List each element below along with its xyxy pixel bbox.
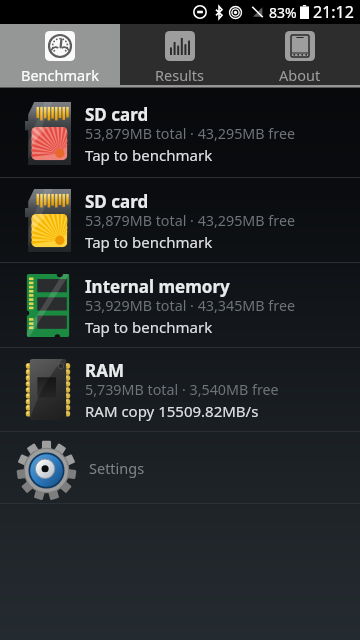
staticText: 83% (269, 3, 297, 22)
staticText: About (279, 65, 321, 85)
staticText: 21:12 (313, 1, 354, 23)
button[interactable]: SD card (0, 178, 360, 262)
staticText: 53,879MB total · 43,295MB free (85, 211, 296, 230)
staticText: 53,879MB total · 43,295MB free (85, 124, 296, 143)
staticText: Tap to benchmark (85, 317, 213, 337)
button[interactable]: Benchmark (0, 24, 120, 85)
staticText: Internal memory (85, 275, 230, 298)
staticText: SD card (85, 103, 149, 126)
button[interactable]: Settings (0, 432, 360, 503)
staticText: Results (155, 65, 205, 85)
button[interactable]: Results (120, 24, 240, 85)
staticText: SD card (85, 190, 149, 213)
button[interactable]: Internal memory (0, 263, 360, 347)
staticText: Settings (89, 458, 145, 478)
staticText: RAM copy 15509.82MB/s (85, 401, 259, 421)
button[interactable]: RAM (0, 348, 360, 431)
staticText: RAM (85, 359, 124, 382)
staticText: Benchmark (21, 65, 99, 85)
staticText: Tap to benchmark (85, 232, 213, 252)
button[interactable]: SD card (0, 89, 360, 177)
staticText: 53,929MB total · 43,345MB free (85, 296, 296, 315)
staticText: 5,739MB total · 3,540MB free (85, 380, 279, 399)
staticText: Tap to benchmark (85, 145, 213, 165)
button[interactable]: About (240, 24, 360, 85)
